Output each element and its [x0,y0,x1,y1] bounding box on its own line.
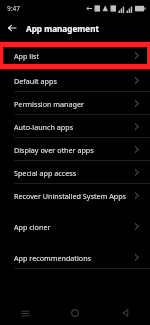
button[interactable]: App list [3,47,147,64]
staticText: App management [26,23,100,34]
button[interactable]: Recover Uninstalled System Apps [0,184,150,207]
staticText: App list [14,51,133,61]
button[interactable]: Permission manager [0,92,150,115]
button[interactable]: App recommendations [0,246,150,269]
staticText: App cloner [14,222,133,232]
staticText: Permission manager [14,99,133,109]
staticText: App recommendations [14,253,133,263]
staticText: Recover Uninstalled System Apps [14,191,133,201]
button[interactable]: Auto-launch apps [0,115,150,138]
button[interactable]: App cloner [0,215,150,238]
staticText: Auto-launch apps [14,122,133,132]
button[interactable]: Display over other apps [0,138,150,161]
staticText: Display over other apps [14,145,133,155]
button[interactable]: Back [0,16,24,40]
staticText: Default apps [14,76,133,86]
button[interactable]: Recent apps [0,301,50,325]
staticText: 9:47 [7,4,20,13]
button[interactable]: Home [50,301,100,325]
button[interactable]: Back [100,301,150,325]
button[interactable]: Special app access [0,161,150,184]
staticText: Special app access [14,168,133,178]
button[interactable]: Default apps [0,69,150,92]
